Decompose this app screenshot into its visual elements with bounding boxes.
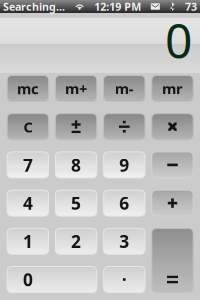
button[interactable]: 5 bbox=[55, 190, 97, 216]
staticText: 12:19 PM bbox=[94, 0, 141, 14]
staticText: 9 bbox=[119, 153, 129, 176]
staticText: 4 bbox=[23, 192, 33, 215]
button[interactable]: Plus bbox=[152, 190, 193, 216]
button[interactable]: 2 bbox=[55, 228, 97, 254]
button[interactable]: mc bbox=[7, 75, 49, 101]
button[interactable]: 0 bbox=[7, 266, 97, 292]
staticText: 2 bbox=[71, 230, 81, 253]
button[interactable]: 9 bbox=[104, 152, 145, 178]
staticText: 73 bbox=[185, 0, 197, 14]
button[interactable]: Decimal point bbox=[104, 266, 145, 292]
button[interactable]: 1 bbox=[7, 228, 49, 254]
staticText: mc bbox=[17, 79, 39, 98]
button[interactable]: C bbox=[7, 114, 49, 140]
staticText: m+ bbox=[65, 79, 87, 98]
button[interactable]: Equals bbox=[152, 228, 193, 292]
button[interactable]: 3 bbox=[104, 228, 145, 254]
button[interactable]: m+ bbox=[55, 75, 97, 101]
staticText: 6 bbox=[119, 192, 129, 215]
button[interactable]: Plus minus bbox=[55, 114, 97, 140]
staticText: m- bbox=[115, 79, 134, 98]
staticText: mr bbox=[162, 79, 183, 98]
staticText: 5 bbox=[71, 192, 81, 215]
button[interactable]: m- bbox=[104, 75, 145, 101]
staticText: C bbox=[23, 117, 32, 136]
staticText: 7 bbox=[23, 153, 33, 176]
button[interactable]: Multiply bbox=[152, 114, 193, 140]
button[interactable]: 4 bbox=[7, 190, 49, 216]
staticText: 0 bbox=[23, 268, 33, 291]
staticText: Searching... bbox=[3, 0, 65, 14]
button[interactable]: 8 bbox=[55, 152, 97, 178]
button[interactable]: mr bbox=[152, 75, 193, 101]
staticText: 8 bbox=[71, 153, 81, 176]
staticText: 3 bbox=[119, 230, 129, 253]
button[interactable]: 7 bbox=[7, 152, 49, 178]
button[interactable]: 6 bbox=[104, 190, 145, 216]
button[interactable]: Divide bbox=[104, 114, 145, 140]
staticText: 1 bbox=[23, 230, 33, 253]
button[interactable]: Minus bbox=[152, 152, 193, 178]
staticText: 0 bbox=[165, 8, 192, 72]
